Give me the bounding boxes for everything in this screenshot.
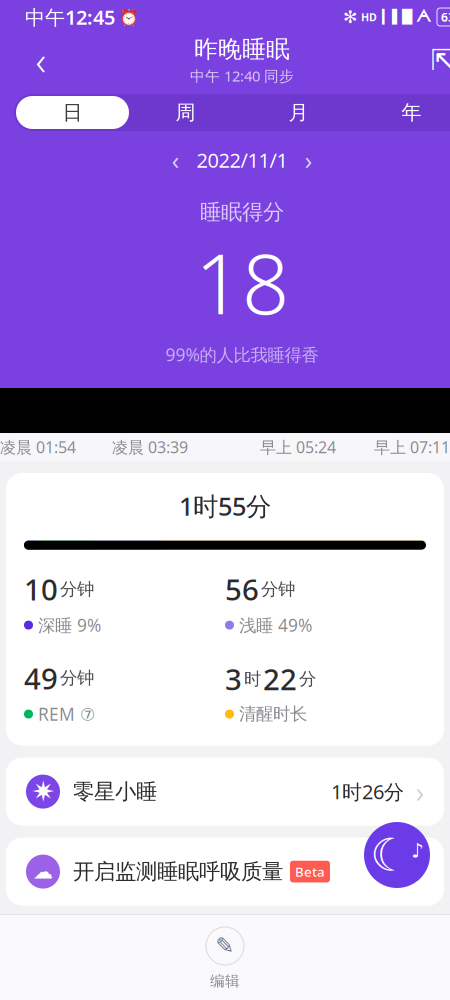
- staticText: ᗅ: [412, 9, 431, 25]
- staticText: 时: [244, 668, 261, 690]
- staticText: ✎: [215, 933, 234, 959]
- staticText: 分钟: [261, 578, 295, 600]
- button[interactable]: 分享: [421, 38, 450, 82]
- staticText: HD: [358, 10, 377, 24]
- staticText: 年: [401, 100, 421, 125]
- staticText: ›: [416, 772, 424, 811]
- button[interactable]: ☁: [6, 838, 444, 906]
- staticText: 22: [263, 659, 297, 698]
- staticText: 开启监测睡眠呼吸质量: [73, 858, 283, 885]
- button[interactable]: 周: [129, 96, 242, 129]
- staticText: 早上 05:24: [260, 436, 336, 458]
- staticText: 凌晨 03:39: [112, 436, 188, 458]
- staticText: 分钟: [60, 578, 94, 600]
- staticText: 深睡 9%: [38, 614, 101, 637]
- staticText: 凌晨 01:54: [0, 436, 76, 458]
- staticText: 1时55分: [179, 489, 271, 523]
- button[interactable]: 后一天: [291, 143, 325, 177]
- staticText: ✻: [343, 7, 358, 27]
- staticText: 10: [24, 570, 58, 609]
- staticText: 63: [441, 9, 450, 25]
- staticText: 零星小睡: [73, 778, 157, 805]
- staticText: ‹: [171, 143, 179, 177]
- button[interactable]: 月: [242, 96, 355, 129]
- staticText: ⏰: [115, 6, 139, 28]
- staticText: ♪: [411, 839, 424, 862]
- staticText: 2022/11/1: [196, 147, 287, 173]
- staticText: ✷: [31, 776, 54, 807]
- staticText: 早上 07:11: [374, 436, 450, 458]
- button[interactable]: 助眠音乐: [364, 822, 430, 888]
- button[interactable]: 前一天: [158, 143, 192, 177]
- button[interactable]: 返回: [19, 38, 63, 82]
- button[interactable]: ✎: [0, 915, 450, 1000]
- staticText: 编辑: [210, 972, 240, 990]
- staticText: ▎▌█: [377, 9, 412, 24]
- staticText: 分: [299, 668, 316, 690]
- staticText: ☾: [370, 829, 411, 881]
- staticText: Beta: [295, 863, 325, 880]
- staticText: 周: [175, 100, 195, 125]
- staticText: 49: [24, 659, 58, 698]
- staticText: 99%的人比我睡得香: [165, 343, 318, 366]
- staticText: 1时26分: [331, 778, 404, 805]
- staticText: 昨晚睡眠: [194, 34, 290, 64]
- staticText: 18: [195, 227, 289, 337]
- staticText: REM ⑦: [38, 703, 96, 726]
- staticText: 浅睡 49%: [239, 614, 312, 637]
- staticText: 睡眠得分: [200, 199, 284, 225]
- staticText: ☁: [33, 860, 53, 883]
- staticText: ›: [304, 143, 312, 177]
- staticText: ⇱: [430, 43, 450, 77]
- staticText: 56: [225, 570, 259, 609]
- button[interactable]: ✷: [6, 758, 444, 826]
- staticText: 3: [225, 659, 242, 698]
- staticText: 日: [62, 100, 82, 125]
- staticText: 中午 12:40 同步: [190, 66, 294, 85]
- staticText: ›: [416, 852, 424, 891]
- button[interactable]: 日: [16, 96, 129, 129]
- button[interactable]: 年: [355, 96, 450, 129]
- staticText: 清醒时长: [239, 703, 307, 725]
- staticText: 分钟: [60, 667, 94, 689]
- staticText: 月: [288, 100, 308, 125]
- staticText: ‹: [35, 33, 46, 86]
- staticText: 中午12:45: [25, 4, 115, 30]
